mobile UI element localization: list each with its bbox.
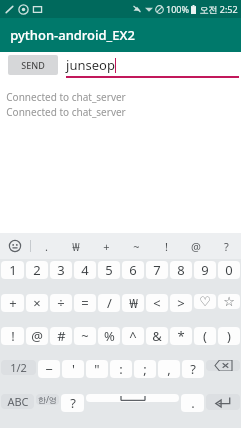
staticText: * xyxy=(177,327,185,345)
button[interactable]: , xyxy=(158,360,180,378)
button[interactable]: < xyxy=(146,294,168,312)
staticText: # xyxy=(57,327,66,345)
staticText: ABC xyxy=(7,394,29,409)
staticText: 1/2 xyxy=(10,360,27,375)
staticText: ~ xyxy=(133,239,140,254)
button[interactable]: @ xyxy=(26,327,48,345)
button[interactable]: ? xyxy=(182,360,204,378)
staticText: > xyxy=(177,294,185,312)
staticText: ; xyxy=(143,360,147,378)
staticText: 0 xyxy=(225,261,233,279)
staticText: ) xyxy=(227,327,231,345)
button[interactable]: 1/2 xyxy=(1,360,36,375)
button[interactable]: : xyxy=(110,360,132,378)
staticText: 5 xyxy=(105,261,113,279)
staticText: 100% xyxy=(166,3,189,15)
staticText: : xyxy=(119,360,123,378)
staticText: ? xyxy=(190,360,196,378)
button[interactable]: % xyxy=(98,327,120,345)
button[interactable]: ~ xyxy=(74,327,96,345)
staticText: junseop xyxy=(66,56,115,74)
button[interactable]: > xyxy=(170,294,192,312)
button[interactable]: ^ xyxy=(122,327,144,345)
button[interactable]: / xyxy=(98,294,120,312)
staticText: ! xyxy=(165,239,168,254)
button[interactable]: ♡ xyxy=(194,294,216,309)
button[interactable]: − xyxy=(38,360,60,378)
staticText: 9 xyxy=(201,261,209,279)
staticText: − xyxy=(45,360,53,378)
button[interactable]: . xyxy=(31,233,61,259)
button[interactable]: ; xyxy=(134,360,156,378)
staticText: 오전 2:52 xyxy=(199,3,238,15)
staticText: " xyxy=(94,360,100,378)
button[interactable]: ₩ xyxy=(122,294,144,312)
button[interactable]: ÷ xyxy=(50,294,72,312)
button[interactable]: Backspace xyxy=(206,360,240,371)
button[interactable]: 한/영 xyxy=(36,394,59,405)
staticText: ^ xyxy=(129,327,137,345)
staticText: × xyxy=(33,294,41,312)
button[interactable]: SEND xyxy=(8,55,58,75)
staticText: < xyxy=(153,294,161,312)
button[interactable]: ) xyxy=(218,327,240,345)
button[interactable]: ₩ xyxy=(61,233,91,259)
button[interactable]: 8 xyxy=(170,261,192,279)
button[interactable]: 9 xyxy=(194,261,216,279)
staticText: ? xyxy=(70,394,76,412)
staticText: . xyxy=(45,239,48,254)
staticText: 2 xyxy=(33,261,41,279)
button[interactable]: ! xyxy=(1,327,24,345)
button[interactable]: × xyxy=(26,294,48,312)
staticText: SEND xyxy=(21,59,45,71)
staticText: 6 xyxy=(129,261,137,279)
staticText: ₩ xyxy=(72,239,80,254)
button[interactable]: 0 xyxy=(218,261,240,279)
button[interactable]: 5 xyxy=(98,261,120,279)
button[interactable]: " xyxy=(86,360,108,378)
button[interactable]: 4 xyxy=(74,261,96,279)
button[interactable]: & xyxy=(146,327,168,345)
button[interactable]: * xyxy=(170,327,192,345)
button[interactable]: = xyxy=(74,294,96,312)
button[interactable]: ~ xyxy=(121,233,151,259)
staticText: = xyxy=(81,294,89,312)
staticText: ♡ xyxy=(199,294,211,309)
button[interactable]: Enter xyxy=(206,394,240,410)
staticText: ( xyxy=(203,327,207,345)
button[interactable]: 2 xyxy=(26,261,48,279)
staticText: 8 xyxy=(177,261,185,279)
button[interactable]: ABC xyxy=(1,394,34,409)
staticText: , xyxy=(167,360,171,378)
button[interactable]: 7 xyxy=(146,261,168,279)
staticText: ~ xyxy=(81,327,89,345)
button[interactable]: + xyxy=(1,294,24,312)
button[interactable]: Emoji xyxy=(0,233,30,259)
button[interactable]: space xyxy=(86,394,179,402)
staticText: ' xyxy=(72,360,75,378)
button[interactable]: + xyxy=(91,233,121,259)
staticText: ? xyxy=(224,239,229,254)
button[interactable]: 3 xyxy=(50,261,72,279)
button[interactable]: # xyxy=(50,327,72,345)
button[interactable]: ( xyxy=(194,327,216,345)
button[interactable]: ☆ xyxy=(218,294,240,309)
button[interactable]: 1 xyxy=(1,261,24,279)
button[interactable]: ' xyxy=(62,360,84,378)
button[interactable]: 6 xyxy=(122,261,144,279)
button[interactable]: ? xyxy=(61,394,84,412)
staticText: & xyxy=(152,327,162,345)
staticText: . xyxy=(191,394,195,412)
button[interactable]: @ xyxy=(181,233,211,259)
staticText: 한/영 xyxy=(38,394,57,405)
staticText: + xyxy=(103,239,110,254)
staticText: / xyxy=(107,294,112,312)
staticText: Connected to chat_server xyxy=(6,90,126,104)
staticText: @ xyxy=(191,239,201,254)
button[interactable]: . xyxy=(181,394,204,412)
staticText: ! xyxy=(11,327,15,345)
staticText: ☆ xyxy=(223,294,235,309)
staticText: python-android_EX2 xyxy=(10,26,135,44)
button[interactable]: ? xyxy=(211,233,241,259)
button[interactable]: ! xyxy=(151,233,181,259)
